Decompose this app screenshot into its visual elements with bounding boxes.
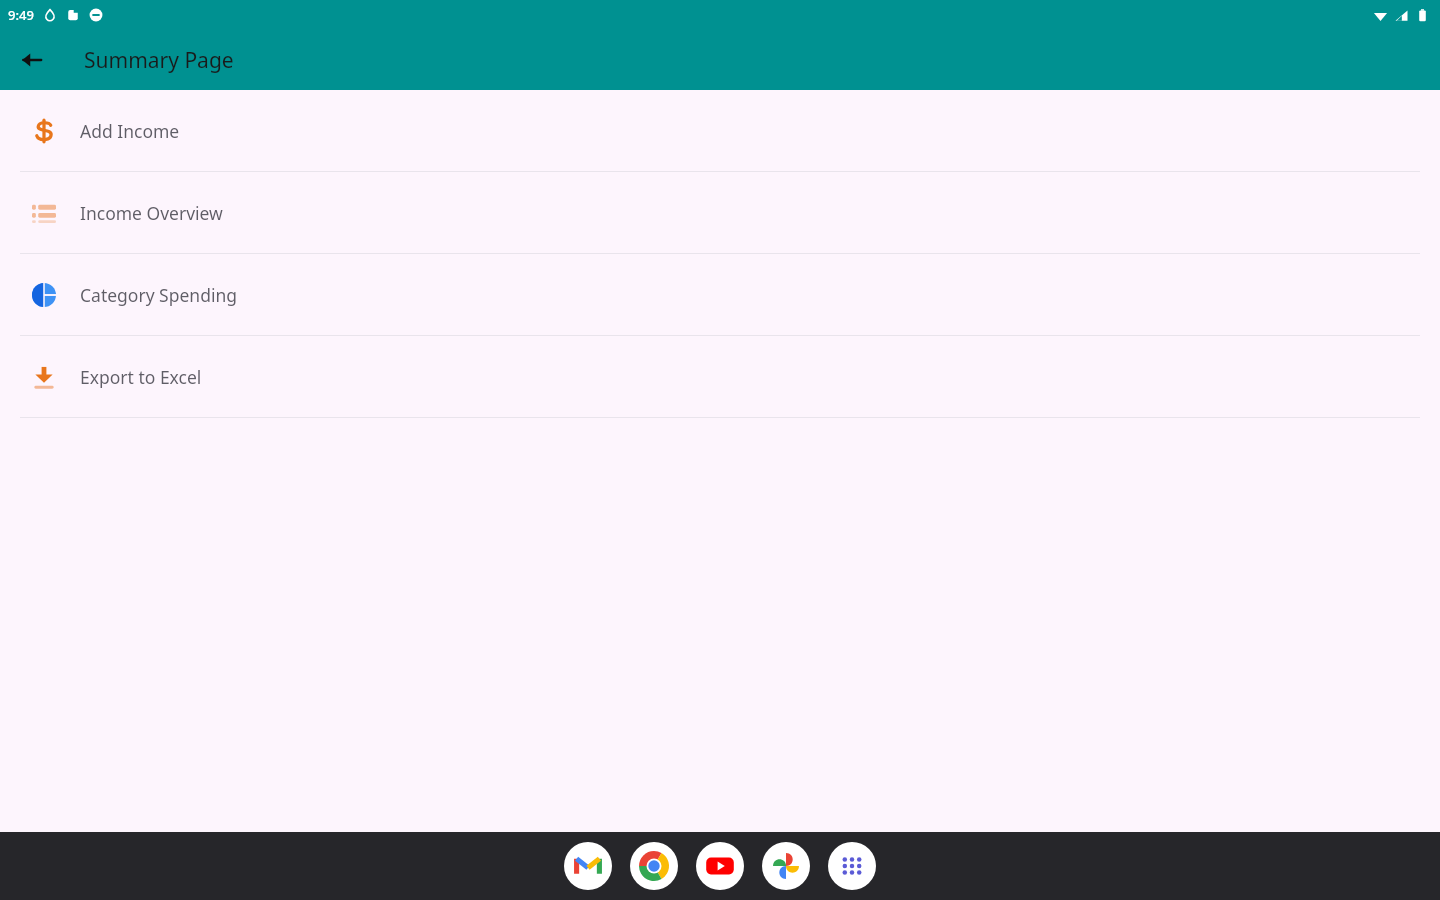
- staticText: Add Income: [80, 119, 180, 143]
- staticText: Export to Excel: [80, 365, 202, 389]
- button[interactable]: Add Income: [0, 90, 1440, 171]
- button[interactable]: YouTube: [696, 842, 744, 890]
- button[interactable]: Back: [10, 38, 54, 82]
- button[interactable]: Chrome: [630, 842, 678, 890]
- button[interactable]: Gmail: [564, 842, 612, 890]
- button[interactable]: Photos: [762, 842, 810, 890]
- button[interactable]: Export to Excel: [0, 336, 1440, 417]
- staticText: Income Overview: [80, 201, 223, 225]
- staticText: 9:49: [8, 6, 34, 24]
- button[interactable]: All apps: [828, 842, 876, 890]
- button[interactable]: Category Spending: [0, 254, 1440, 335]
- staticText: Summary Page: [84, 46, 234, 75]
- button[interactable]: Income Overview: [0, 172, 1440, 253]
- staticText: Category Spending: [80, 283, 238, 307]
